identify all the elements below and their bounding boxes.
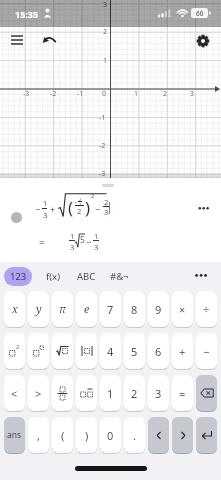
staticText: − xyxy=(95,203,101,215)
staticText: × xyxy=(179,302,186,317)
button[interactable]: 123 xyxy=(4,267,32,286)
button[interactable] xyxy=(197,204,211,212)
staticText: − xyxy=(86,236,92,248)
button[interactable] xyxy=(196,417,217,453)
staticText: 5 xyxy=(131,344,138,359)
staticText: ( xyxy=(68,196,74,219)
staticText: 3 xyxy=(103,0,108,10)
staticText: 1 xyxy=(103,56,108,66)
button[interactable] xyxy=(28,333,49,369)
button[interactable]: π xyxy=(52,291,73,327)
staticText: 2 xyxy=(77,206,82,216)
staticText: -1 xyxy=(77,89,84,99)
button[interactable]: 7 xyxy=(100,291,121,327)
button[interactable]: x xyxy=(4,291,25,327)
staticText: -3 xyxy=(99,169,106,179)
staticText: -2 xyxy=(50,89,57,99)
staticText: -1 xyxy=(99,113,106,123)
button[interactable]: ÷ xyxy=(196,291,217,327)
button[interactable]: #&¬ xyxy=(104,267,134,286)
button[interactable] xyxy=(40,32,58,48)
button[interactable]: 8 xyxy=(124,291,145,327)
button[interactable] xyxy=(11,212,22,223)
button[interactable]: ) xyxy=(76,417,97,453)
button[interactable]: > xyxy=(28,375,49,411)
button[interactable]: f(x) xyxy=(40,267,66,286)
staticText: π xyxy=(59,302,66,316)
button[interactable]: ABC xyxy=(72,267,100,286)
staticText: 1 xyxy=(134,89,139,99)
staticText: e xyxy=(84,302,90,316)
staticText: 6 xyxy=(155,344,162,359)
staticText: ABC xyxy=(77,270,96,283)
staticText: 1 xyxy=(107,386,114,401)
button[interactable] xyxy=(148,417,169,453)
button[interactable] xyxy=(194,271,208,280)
button[interactable] xyxy=(76,333,97,369)
button[interactable] xyxy=(7,33,27,49)
staticText: 15:35 xyxy=(15,8,39,20)
button[interactable]: ( xyxy=(52,417,73,453)
button[interactable]: = xyxy=(172,375,193,411)
button[interactable]: y xyxy=(28,291,49,327)
staticText: ( xyxy=(61,428,65,443)
button[interactable]: 1 xyxy=(100,375,121,411)
staticText: 9 xyxy=(155,302,162,317)
staticText: x xyxy=(12,302,18,316)
staticText: , xyxy=(37,428,40,443)
button[interactable]: < xyxy=(4,375,25,411)
staticText: f(x) xyxy=(46,270,60,283)
staticText: 2 xyxy=(163,89,168,99)
staticText: #&¬ xyxy=(110,270,129,283)
staticText: 2 xyxy=(16,343,20,351)
button[interactable] xyxy=(76,375,97,411)
staticText: 8 xyxy=(131,302,138,317)
button[interactable] xyxy=(194,32,212,50)
button[interactable]: 2 xyxy=(4,333,25,369)
staticText: 60 xyxy=(196,9,204,18)
staticText: − xyxy=(203,344,210,359)
button[interactable]: , xyxy=(28,417,49,453)
button[interactable]: ans xyxy=(4,417,25,453)
button[interactable]: 2 xyxy=(124,375,145,411)
staticText: > xyxy=(35,386,42,401)
button[interactable]: 4 xyxy=(100,333,121,369)
staticText: 1 xyxy=(94,231,99,241)
staticText: 1 xyxy=(43,198,48,208)
staticText: 123 xyxy=(10,270,27,283)
button[interactable]: + xyxy=(172,333,193,369)
staticText: 2 xyxy=(103,27,108,37)
button[interactable]: − xyxy=(196,333,217,369)
staticText: 0 xyxy=(102,89,107,99)
button[interactable]: 9 xyxy=(148,291,169,327)
staticText: ÷ xyxy=(203,302,210,317)
staticText: ans xyxy=(7,429,22,441)
staticText: ) xyxy=(85,196,91,219)
button[interactable]: 3 xyxy=(148,375,169,411)
staticText: y xyxy=(36,302,42,316)
staticText: 3 xyxy=(104,207,109,217)
button[interactable]: 6 xyxy=(148,333,169,369)
staticText: 0 xyxy=(107,428,114,443)
staticText: 3 xyxy=(155,386,162,401)
button[interactable] xyxy=(172,417,193,453)
button[interactable] xyxy=(52,333,73,369)
staticText: 3 xyxy=(43,210,48,220)
staticText: 3 xyxy=(79,202,82,207)
staticText: < xyxy=(11,386,18,401)
staticText: 3 xyxy=(94,242,99,252)
staticText: 7 xyxy=(107,302,114,317)
button[interactable]: e xyxy=(76,291,97,327)
staticText: 5 xyxy=(80,234,85,246)
staticText: − xyxy=(35,203,41,215)
button[interactable] xyxy=(196,375,217,411)
button[interactable]: 5 xyxy=(124,333,145,369)
button[interactable]: 0 xyxy=(100,417,121,453)
staticText: + xyxy=(50,203,56,215)
button[interactable]: × xyxy=(172,291,193,327)
staticText: 2 xyxy=(79,197,82,202)
staticText: 3 xyxy=(190,89,195,99)
button[interactable]: . xyxy=(124,417,145,453)
button[interactable] xyxy=(52,375,73,411)
staticText: -3 xyxy=(23,89,30,99)
